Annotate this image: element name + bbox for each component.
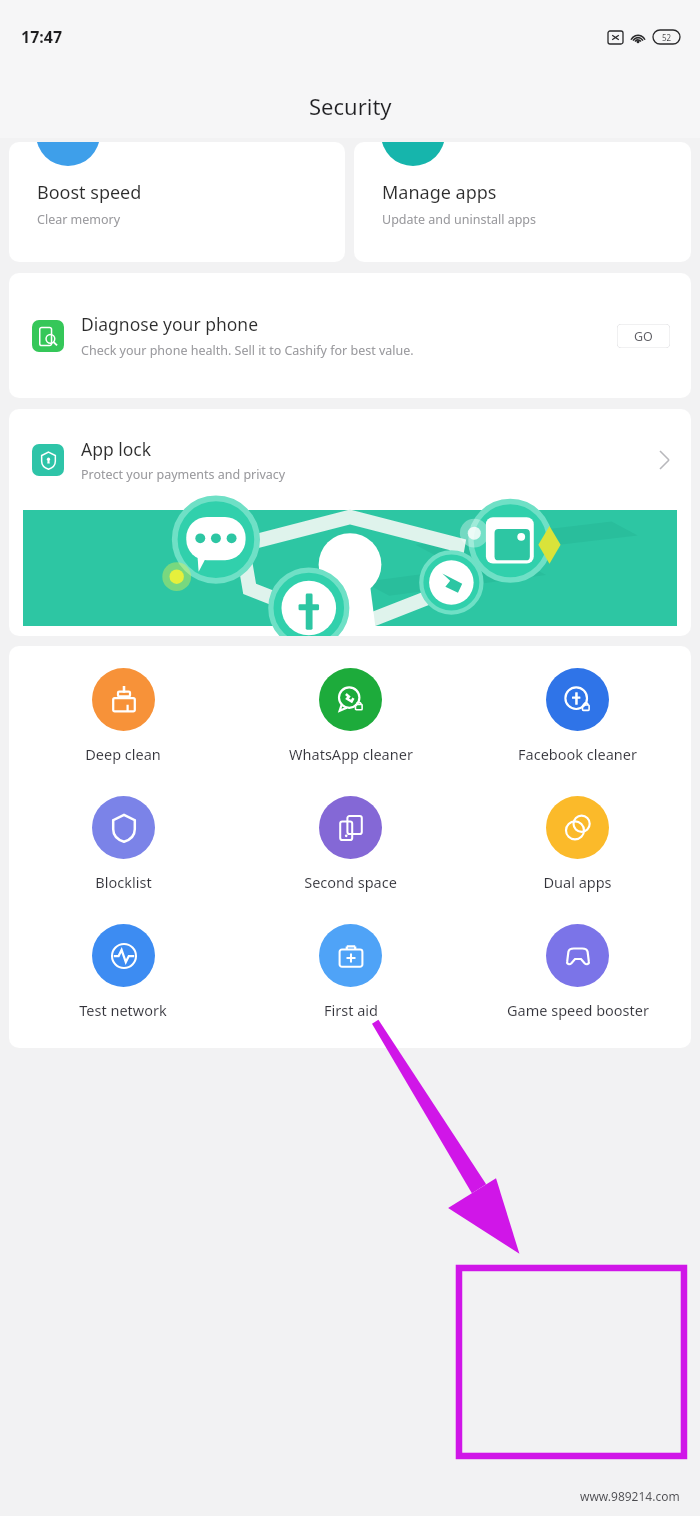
staticText: Boost speed — [37, 180, 142, 205]
staticText: Update and uninstall apps — [382, 211, 537, 228]
staticText: Diagnose your phone — [81, 312, 259, 336]
button[interactable]: Facebook cleaner — [464, 664, 691, 768]
button[interactable]: Test network — [9, 920, 237, 1024]
button[interactable]: First aid — [237, 920, 464, 1024]
button[interactable]: Second space — [237, 792, 464, 896]
button[interactable]: Game speed booster — [464, 920, 691, 1024]
staticText: Deep clean — [85, 744, 161, 764]
button[interactable]: WhatsApp cleaner — [237, 664, 464, 768]
staticText: www.989214.com — [580, 1488, 680, 1504]
button[interactable]: Dual apps — [464, 792, 691, 896]
staticText: Game speed booster — [507, 1000, 649, 1020]
staticText: 17:47 — [21, 26, 63, 48]
button[interactable]: Deep clean — [9, 664, 237, 768]
staticText: First aid — [324, 1000, 378, 1020]
button[interactable]: GO — [617, 324, 670, 348]
button[interactable]: App lock — [9, 409, 691, 510]
button[interactable] — [23, 510, 677, 626]
staticText: Clear memory — [37, 211, 121, 228]
staticText: Manage apps — [382, 180, 497, 205]
staticText: Dual apps — [543, 872, 612, 892]
staticText: Protect your payments and privacy — [81, 466, 286, 483]
staticText: Second space — [304, 872, 397, 892]
button[interactable]: Blocklist — [9, 792, 237, 896]
staticText: App lock — [81, 437, 152, 461]
staticText: 52 — [662, 32, 672, 43]
staticText: Blocklist — [95, 872, 152, 892]
staticText: Security — [309, 91, 392, 121]
staticText: Check your phone health. Sell it to Cash… — [81, 342, 414, 359]
button[interactable]: Boost speed — [9, 142, 345, 262]
staticText: GO — [634, 328, 653, 345]
staticText: Test network — [79, 1000, 167, 1020]
button[interactable]: Diagnose your phone — [9, 273, 691, 398]
staticText: WhatsApp cleaner — [289, 744, 413, 764]
button[interactable]: Manage apps — [354, 142, 691, 262]
staticText: Facebook cleaner — [518, 744, 637, 764]
